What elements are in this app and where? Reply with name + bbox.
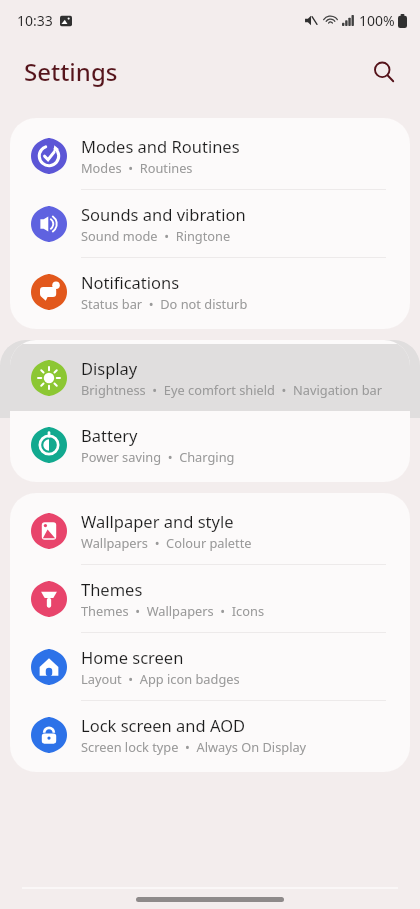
staticText: Brightness • Eye comfort shield • Naviga…	[81, 381, 383, 398]
staticText: Screen lock type • Always On Display	[81, 738, 307, 755]
staticText: Power saving • Charging	[81, 448, 235, 465]
staticText: Modes and Routines	[81, 135, 240, 157]
button[interactable]: Notifications	[10, 258, 410, 325]
button[interactable]: Sounds and vibration	[10, 190, 410, 257]
staticText: Battery	[81, 424, 138, 446]
button[interactable]: Display	[10, 344, 410, 411]
staticText: Display	[81, 357, 138, 379]
staticText: Layout • App icon badges	[81, 670, 240, 687]
button[interactable]: Home screen	[10, 633, 410, 700]
staticText: Notifications	[81, 271, 180, 293]
staticText: Themes • Wallpapers • Icons	[81, 602, 265, 619]
staticText: Sound mode • Ringtone	[81, 227, 231, 244]
staticText: Settings	[24, 55, 118, 88]
button[interactable]: Modes and Routines	[10, 122, 410, 189]
staticText: Themes	[81, 578, 143, 600]
button[interactable]: Search	[362, 50, 406, 94]
staticText: 10:33	[17, 11, 53, 30]
staticText: Status bar • Do not disturb	[81, 295, 248, 312]
staticText: Sounds and vibration	[81, 203, 246, 225]
button[interactable]: Wallpaper and style	[10, 497, 410, 564]
button[interactable]: Lock screen and AOD	[10, 701, 410, 768]
staticText: 100%	[359, 11, 395, 30]
button[interactable]: Battery	[10, 411, 410, 478]
staticText: Wallpapers • Colour palette	[81, 534, 252, 551]
staticText: Wallpaper and style	[81, 510, 234, 532]
button[interactable]: Themes	[10, 565, 410, 632]
staticText: Lock screen and AOD	[81, 714, 246, 736]
staticText: Home screen	[81, 646, 184, 668]
staticText: Modes • Routines	[81, 159, 193, 176]
